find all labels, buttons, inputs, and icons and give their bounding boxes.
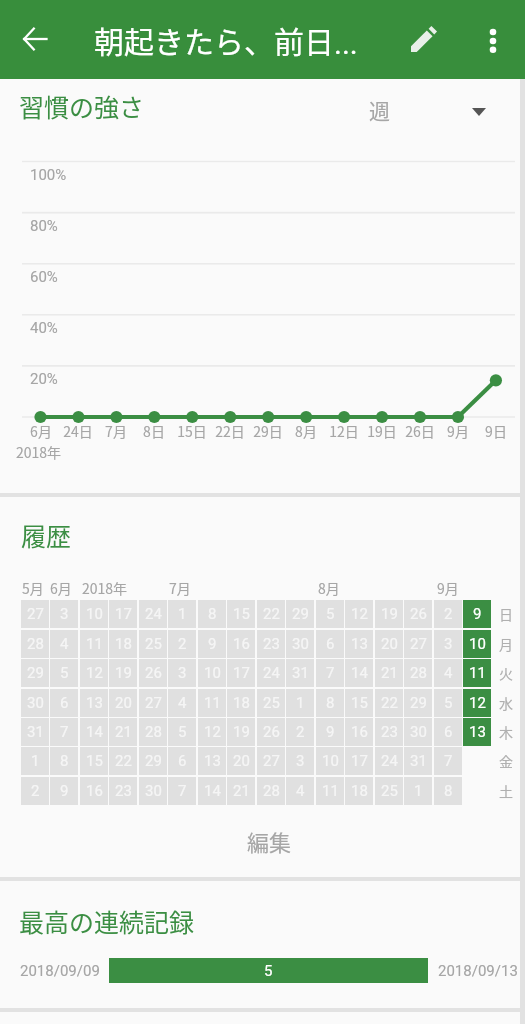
button[interactable]: 25 — [375, 777, 403, 805]
button[interactable]: 28 — [21, 630, 49, 658]
button[interactable]: 8 — [198, 600, 226, 628]
button[interactable]: 23 — [109, 777, 137, 805]
button[interactable]: 7 — [434, 747, 462, 775]
button[interactable]: 13 — [80, 689, 108, 717]
button[interactable]: 19 — [227, 718, 255, 746]
button[interactable]: 9 — [316, 718, 344, 746]
button[interactable]: 12 — [198, 718, 226, 746]
button[interactable]: 29 — [404, 689, 432, 717]
button[interactable]: 10 — [316, 747, 344, 775]
button[interactable]: 3 — [50, 600, 78, 628]
button[interactable]: 27 — [404, 630, 432, 658]
button[interactable]: 3 — [434, 630, 462, 658]
button[interactable]: 26 — [404, 600, 432, 628]
button[interactable]: 14 — [80, 718, 108, 746]
button[interactable]: 22 — [375, 689, 403, 717]
button[interactable]: 1 — [404, 777, 432, 805]
button[interactable]: 1 — [21, 747, 49, 775]
button[interactable]: 10 — [463, 630, 491, 658]
button[interactable]: 7 — [168, 777, 196, 805]
button[interactable]: 20 — [227, 747, 255, 775]
button[interactable]: 11 — [198, 689, 226, 717]
button[interactable]: 28 — [404, 659, 432, 687]
button[interactable]: 30 — [139, 777, 167, 805]
button[interactable]: 18 — [345, 777, 373, 805]
button[interactable]: 5 — [50, 659, 78, 687]
button[interactable]: 24 — [375, 747, 403, 775]
button[interactable]: 27 — [139, 689, 167, 717]
button[interactable]: 19 — [375, 600, 403, 628]
button[interactable]: 2 — [434, 600, 462, 628]
button[interactable]: 15 — [80, 747, 108, 775]
button[interactable]: 21 — [109, 718, 137, 746]
button[interactable]: 13 — [463, 718, 491, 746]
button[interactable]: 3 — [286, 747, 314, 775]
button[interactable]: More options — [469, 15, 517, 63]
button[interactable]: 4 — [50, 630, 78, 658]
button[interactable]: 6 — [50, 689, 78, 717]
button[interactable]: 15 — [345, 689, 373, 717]
button[interactable]: 18 — [227, 689, 255, 717]
button[interactable]: 4 — [168, 689, 196, 717]
button[interactable]: 8 — [316, 689, 344, 717]
button[interactable]: 14 — [198, 777, 226, 805]
button[interactable]: 9 — [50, 777, 78, 805]
button[interactable]: 3 — [168, 659, 196, 687]
button[interactable]: 17 — [345, 747, 373, 775]
button[interactable]: 6 — [168, 747, 196, 775]
button[interactable]: 2 — [168, 630, 196, 658]
button[interactable]: 17 — [109, 600, 137, 628]
button[interactable]: 21 — [375, 659, 403, 687]
button[interactable]: 8 — [50, 747, 78, 775]
button[interactable]: 6 — [316, 630, 344, 658]
button[interactable]: 24 — [139, 600, 167, 628]
button[interactable]: 21 — [227, 777, 255, 805]
button[interactable]: 22 — [109, 747, 137, 775]
button[interactable]: 10 — [198, 659, 226, 687]
button[interactable]: 11 — [80, 630, 108, 658]
button[interactable]: 16 — [80, 777, 108, 805]
button[interactable]: 30 — [21, 689, 49, 717]
button[interactable]: 5 — [109, 958, 428, 983]
button[interactable]: 14 — [345, 659, 373, 687]
button[interactable]: 31 — [21, 718, 49, 746]
button[interactable]: 5 — [316, 600, 344, 628]
button[interactable]: 5 — [168, 718, 196, 746]
button[interactable]: 16 — [227, 630, 255, 658]
button[interactable]: 29 — [286, 600, 314, 628]
button[interactable]: 26 — [257, 718, 285, 746]
button[interactable]: 23 — [257, 630, 285, 658]
button[interactable]: 29 — [21, 659, 49, 687]
button[interactable]: 10 — [80, 600, 108, 628]
button[interactable]: 30 — [404, 718, 432, 746]
button[interactable]: 15 — [227, 600, 255, 628]
button[interactable]: 12 — [463, 689, 491, 717]
button[interactable]: 8 — [434, 777, 462, 805]
button[interactable]: 11 — [463, 659, 491, 687]
button[interactable]: 12 — [80, 659, 108, 687]
button[interactable]: 9 — [198, 630, 226, 658]
button[interactable]: 4 — [434, 659, 462, 687]
button[interactable]: Change interval — [455, 88, 503, 136]
button[interactable]: 1 — [286, 689, 314, 717]
button[interactable]: 7 — [316, 659, 344, 687]
button[interactable]: 29 — [139, 747, 167, 775]
button[interactable]: 24 — [257, 659, 285, 687]
button[interactable]: 19 — [109, 659, 137, 687]
button[interactable]: 1 — [168, 600, 196, 628]
button[interactable]: 20 — [375, 630, 403, 658]
button[interactable]: 20 — [109, 689, 137, 717]
button[interactable]: 12 — [345, 600, 373, 628]
button[interactable]: 16 — [345, 718, 373, 746]
button[interactable]: 23 — [375, 718, 403, 746]
button[interactable]: 2 — [21, 777, 49, 805]
button[interactable]: 5 — [434, 689, 462, 717]
button[interactable]: 13 — [345, 630, 373, 658]
button[interactable]: 22 — [257, 600, 285, 628]
button[interactable]: 28 — [257, 777, 285, 805]
button[interactable]: 31 — [286, 659, 314, 687]
button[interactable]: 編集 — [9, 815, 525, 867]
button[interactable]: 25 — [139, 630, 167, 658]
button[interactable]: 11 — [316, 777, 344, 805]
button[interactable]: 2 — [286, 718, 314, 746]
